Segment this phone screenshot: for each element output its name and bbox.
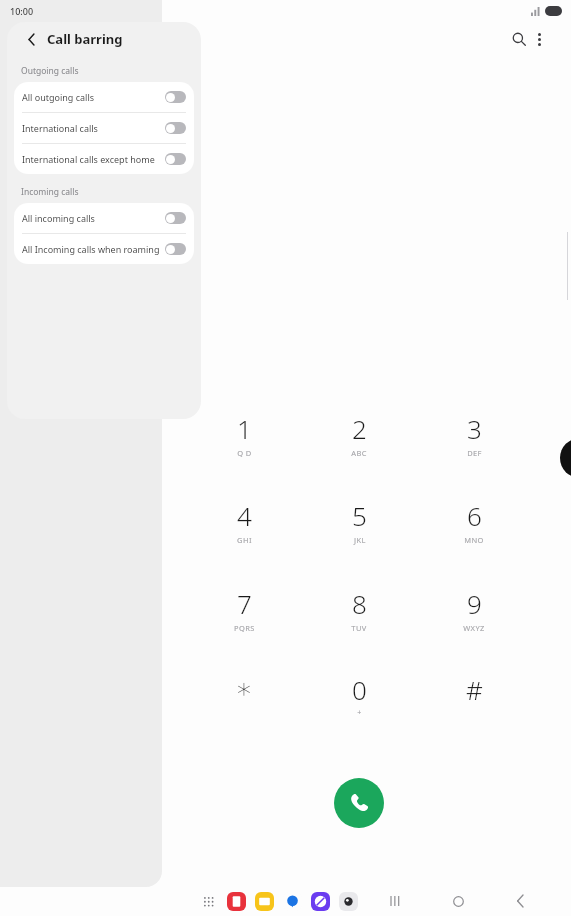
button[interactable]: Home xyxy=(445,888,471,914)
staticText: Q D xyxy=(237,448,252,458)
staticText: JKL xyxy=(354,535,366,545)
button[interactable]: Toggle xyxy=(165,212,186,224)
button[interactable]: Camera xyxy=(339,892,358,911)
button[interactable]: Recents xyxy=(383,888,409,914)
staticText: All outgoing calls xyxy=(22,91,161,103)
staticText: 1 xyxy=(237,411,252,446)
button[interactable]: All apps xyxy=(200,893,218,911)
staticText: International calls xyxy=(22,122,161,134)
staticText: 2 xyxy=(352,411,367,446)
button[interactable]: Toggle xyxy=(165,122,186,134)
button[interactable]: 5 xyxy=(321,498,397,554)
button[interactable]: Internet xyxy=(311,892,330,911)
button[interactable]: Search xyxy=(505,25,533,53)
button[interactable]: Call xyxy=(334,778,384,828)
staticText: 5 xyxy=(352,498,367,533)
staticText: All Incoming calls when roaming xyxy=(22,243,161,255)
staticText: WXYZ xyxy=(463,623,485,633)
button[interactable]: Toggle xyxy=(165,91,186,103)
staticText: 9 xyxy=(467,586,482,621)
staticText: 10:00 xyxy=(10,5,34,17)
staticText: + xyxy=(357,708,362,718)
button[interactable]: All incoming calls xyxy=(14,203,194,233)
button[interactable]: International calls except home xyxy=(14,144,194,174)
button[interactable]: ∗ xyxy=(206,672,282,728)
staticText: 4 xyxy=(237,498,252,533)
staticText: 7 xyxy=(237,586,252,621)
button[interactable]: 6 xyxy=(436,498,512,554)
button[interactable]: All outgoing calls xyxy=(14,82,194,112)
button[interactable]: Gallery xyxy=(255,892,274,911)
button[interactable]: 0 xyxy=(321,672,397,728)
staticText: PQRS xyxy=(234,623,255,633)
button[interactable]: Back xyxy=(21,29,41,49)
staticText: All incoming calls xyxy=(22,212,161,224)
button[interactable]: Messages xyxy=(283,892,302,911)
staticText: 8 xyxy=(352,586,367,621)
button[interactable]: All Incoming calls when roaming xyxy=(14,234,194,264)
staticText: GHI xyxy=(237,535,252,545)
button[interactable]: # xyxy=(436,672,512,728)
button[interactable]: 1 xyxy=(206,411,282,467)
staticText: Incoming calls xyxy=(21,186,79,198)
button[interactable]: Back xyxy=(507,888,533,914)
staticText: Call barring xyxy=(47,30,123,48)
staticText: International calls except home xyxy=(22,153,161,165)
button[interactable]: 7 xyxy=(206,586,282,642)
button[interactable]: 2 xyxy=(321,411,397,467)
button[interactable]: 4 xyxy=(206,498,282,554)
staticText: DEF xyxy=(467,448,482,458)
button[interactable]: 3 xyxy=(436,411,512,467)
button[interactable]: Toggle xyxy=(165,153,186,165)
staticText: 3 xyxy=(467,411,482,446)
button[interactable]: Toggle xyxy=(165,243,186,255)
button[interactable]: More options xyxy=(525,25,553,53)
staticText: ABC xyxy=(351,448,367,458)
staticText: Outgoing calls xyxy=(21,65,79,77)
button[interactable]: International calls xyxy=(14,113,194,143)
staticText: 6 xyxy=(467,498,482,533)
staticText: TUV xyxy=(351,623,367,633)
staticText: # xyxy=(466,672,483,707)
button[interactable]: Notes xyxy=(227,892,246,911)
button[interactable]: 8 xyxy=(321,586,397,642)
staticText: 0 xyxy=(352,672,367,707)
button[interactable]: 9 xyxy=(436,586,512,642)
staticText: MNO xyxy=(464,535,484,545)
staticText: ∗ xyxy=(235,672,253,705)
